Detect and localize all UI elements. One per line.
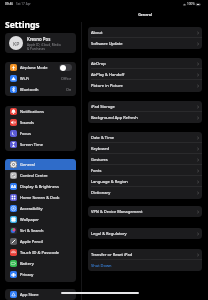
other: Open [197,105,199,109]
button[interactable]: Software Update [88,38,202,49]
button[interactable]: Accessibility [5,203,76,214]
button[interactable]: Notifications [5,106,76,117]
button[interactable]: Touch ID & Passcode [5,247,76,258]
button[interactable]: Airplane Mode [59,64,72,71]
staticText: Touch ID & Passcode [20,250,60,255]
staticText: 09:46 [5,2,13,6]
staticText: Siri & Search [20,228,44,233]
other: Open [197,158,199,162]
staticText: General [20,162,35,167]
staticText: AirPlay & Handoff [91,72,125,77]
staticText: Shut Down [91,263,112,268]
other: Open [197,169,199,173]
button[interactable]: App Store [5,289,76,300]
staticText: Airplane Mode [20,65,48,70]
staticText: Wi-Fi [20,76,30,81]
staticText: Kresno Pos [27,36,51,42]
button[interactable]: Home Screen & Dock [5,192,76,203]
staticText: Dictionary [91,190,111,195]
button[interactable]: AA [5,181,76,192]
button[interactable]: About [88,27,202,38]
staticText: Focus [20,131,31,136]
staticText: Language & Region [91,179,128,184]
button[interactable]: Control Centre [5,170,76,181]
other: Open [197,42,199,46]
button[interactable]: iPad Storage [88,101,202,112]
button[interactable]: Dictionary [88,187,202,198]
staticText: Notifications [20,109,44,114]
button[interactable]: Bluetooth [5,84,76,95]
staticText: AA [11,184,16,189]
staticText: Settings [5,19,40,31]
staticText: Sounds [20,120,34,125]
button[interactable]: Transfer or Reset iPad [88,249,202,260]
staticText: Privacy [20,272,34,277]
staticText: Fonts [91,168,102,173]
other: Open [197,210,199,214]
other: Open [197,253,199,257]
button[interactable]: Wi-Fi [5,73,76,84]
staticText: AirDrop [91,61,106,66]
other: Open [197,136,199,140]
staticText: Bluetooth [20,87,39,92]
button[interactable]: Gestures [88,154,202,165]
staticText: About [91,30,103,35]
button[interactable]: Keyboard [88,143,202,154]
button[interactable]: AirPlay & Handoff [88,69,202,80]
button[interactable]: Language & Region [88,176,202,187]
staticText: Keyboard [91,146,109,151]
staticText: Gestures [91,157,108,162]
staticText: Picture in Picture [91,83,123,88]
staticText: iPad Storage [91,104,115,109]
staticText: Screen Time [20,142,43,147]
button[interactable]: Battery [5,258,76,269]
other: Open [197,232,199,236]
staticText: Legal & Regulatory [91,231,127,236]
staticText: KP [13,40,20,47]
other: Open [197,84,199,88]
button[interactable]: Apple Pencil [5,236,76,247]
staticText: Apple Pencil [20,239,43,244]
button[interactable]: KP [5,33,76,53]
staticText: Software Update [91,41,123,46]
other: Open [197,73,199,77]
other: Open [197,31,199,35]
button[interactable]: Legal & Regulatory [88,228,202,239]
staticText: Control Centre [20,173,48,178]
staticText: Battery [20,261,34,266]
staticText: 100% [187,2,195,6]
staticText: Apple ID, iCloud, Media [27,43,61,47]
staticText: Date & Time [91,135,115,140]
button[interactable]: Fonts [88,165,202,176]
button[interactable]: Wallpaper [5,214,76,225]
staticText: & Purchases [27,47,45,51]
staticText: App Store [20,292,39,297]
staticText: Background App Refresh [91,115,138,120]
staticText: Home Screen & Dock [20,195,60,200]
staticText: Transfer or Reset iPad [91,252,133,257]
button[interactable]: General [5,159,76,170]
button[interactable]: AirDrop [88,58,202,69]
other: Open [197,116,199,120]
staticText: General [88,12,202,17]
other: Open [197,180,199,184]
button[interactable]: Shut Down [88,260,202,271]
button[interactable]: Picture in Picture [88,80,202,91]
staticText: On [66,87,72,92]
staticText: Accessibility [20,206,43,211]
staticText: VPN & Device Management [91,209,143,214]
staticText: Office [61,76,72,81]
staticText: Wallpaper [20,217,40,222]
button[interactable]: Siri & Search [5,225,76,236]
staticText: Sat 17 Apr [16,2,31,6]
other: Open [197,147,199,151]
button[interactable]: Date & Time [88,132,202,143]
button[interactable]: VPN & Device Management [88,206,202,217]
button[interactable]: Screen Time [5,139,76,150]
button[interactable]: Privacy [5,269,76,280]
button[interactable]: Background App Refresh [88,112,202,123]
other: Open [197,191,199,195]
button[interactable]: Focus [5,128,76,139]
button[interactable]: Airplane Mode [5,62,76,73]
button[interactable]: Sounds [5,117,76,128]
